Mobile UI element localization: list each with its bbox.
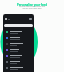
- button[interactable]: [4, 24, 33, 27]
- button[interactable]: [3, 29, 34, 35]
- button[interactable]: Settings: [29, 18, 32, 20]
- staticText: Choose topics and sources you like for y…: [0, 5, 64, 9]
- button[interactable]: [3, 41, 34, 47]
- staticText: Personalise your feed: [0, 3, 64, 7]
- button[interactable]: [3, 35, 34, 41]
- button[interactable]: [3, 59, 34, 65]
- button[interactable]: [3, 53, 34, 59]
- button[interactable]: [3, 65, 34, 71]
- button[interactable]: [3, 47, 34, 53]
